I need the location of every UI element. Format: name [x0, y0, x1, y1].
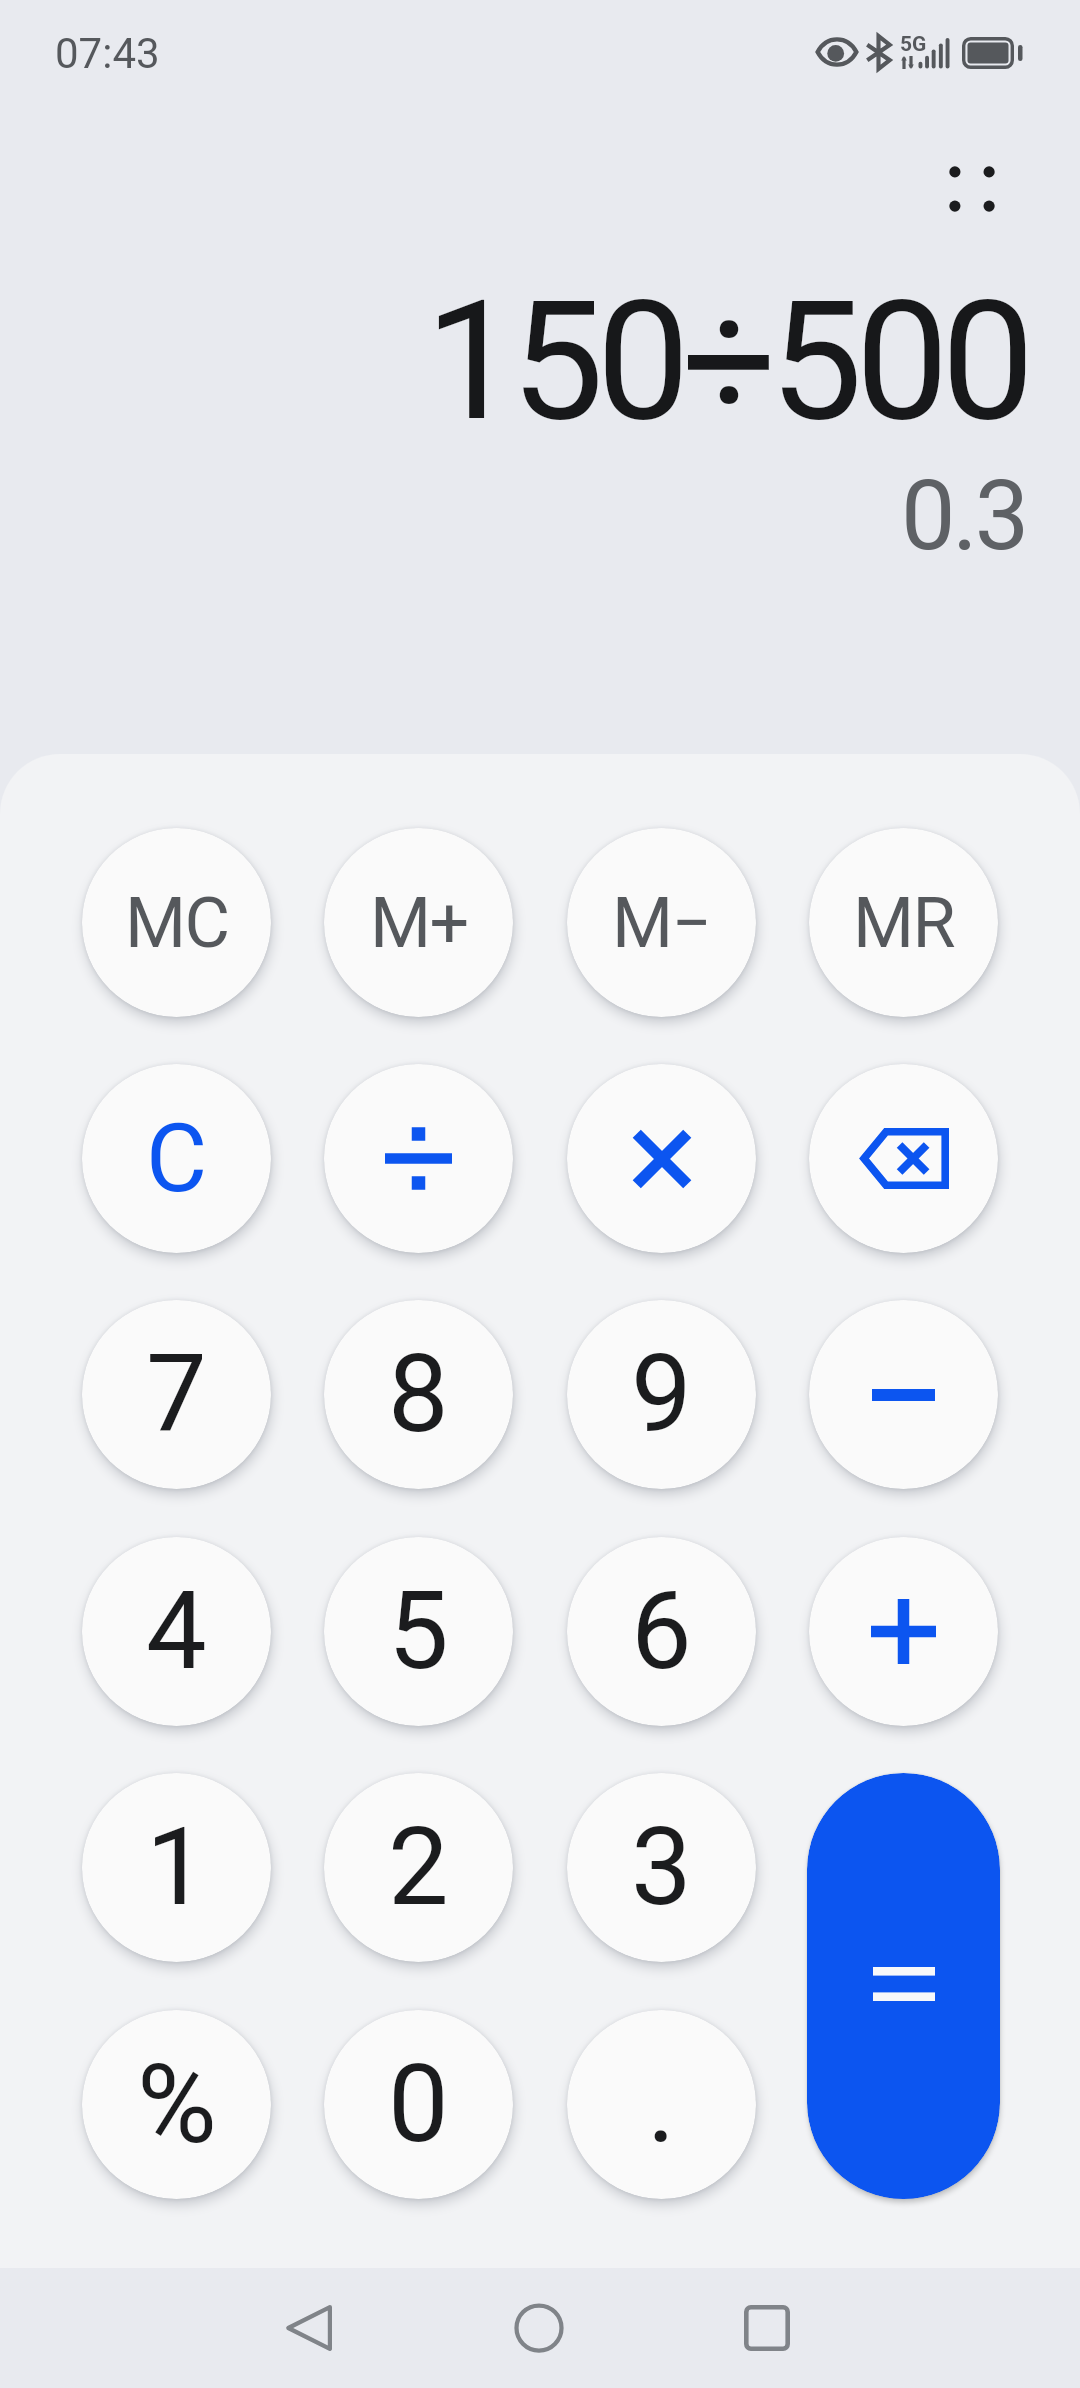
button[interactable]: Plus: [809, 1537, 998, 1726]
button[interactable]: Recents: [707, 2268, 827, 2388]
button[interactable]: MC: [82, 828, 271, 1017]
staticText: 0: [388, 2041, 449, 2168]
staticText: %: [137, 2041, 217, 2169]
button[interactable]: .: [567, 2010, 756, 2199]
button[interactable]: M−: [567, 828, 756, 1017]
staticText: 9: [631, 1331, 692, 1458]
staticText: C: [146, 1104, 208, 1214]
staticText: 2: [388, 1804, 449, 1931]
staticText: 4: [146, 1568, 207, 1695]
button[interactable]: 7: [82, 1300, 271, 1489]
button[interactable]: Divide: [324, 1064, 513, 1253]
button[interactable]: Multiply: [567, 1064, 756, 1253]
button[interactable]: 4: [82, 1537, 271, 1726]
button[interactable]: MR: [809, 828, 998, 1017]
button[interactable]: M+: [324, 828, 513, 1017]
staticText: 3: [631, 1804, 692, 1931]
button[interactable]: 6: [567, 1537, 756, 1726]
staticText: 0.3: [900, 459, 1026, 573]
staticText: 5G: [900, 32, 927, 57]
button[interactable]: Equals: [807, 1773, 1000, 2199]
staticText: 07:43: [55, 29, 160, 78]
button[interactable]: 3: [567, 1773, 756, 1962]
staticText: 150÷500: [424, 264, 1027, 459]
button[interactable]: %: [82, 2010, 271, 2199]
staticText: M+: [370, 882, 468, 964]
button[interactable]: C: [82, 1064, 271, 1253]
staticText: .: [647, 2041, 676, 2168]
staticText: MR: [853, 882, 955, 964]
staticText: 7: [146, 1331, 207, 1458]
staticText: M−: [612, 882, 711, 964]
button[interactable]: 0: [324, 2010, 513, 2199]
button[interactable]: 1: [82, 1773, 271, 1962]
button[interactable]: 9: [567, 1300, 756, 1489]
staticText: 5: [388, 1568, 449, 1695]
staticText: 8: [388, 1331, 449, 1458]
button[interactable]: 5: [324, 1537, 513, 1726]
button[interactable]: More options: [927, 144, 1017, 234]
button[interactable]: 8: [324, 1300, 513, 1489]
staticText: 1: [146, 1804, 207, 1931]
button[interactable]: 2: [324, 1773, 513, 1962]
button[interactable]: Backspace: [809, 1064, 998, 1253]
staticText: 6: [631, 1568, 692, 1695]
staticText: MC: [125, 882, 229, 964]
button[interactable]: Back: [248, 2268, 368, 2388]
button[interactable]: Home: [479, 2268, 599, 2388]
button[interactable]: Minus: [809, 1300, 998, 1489]
